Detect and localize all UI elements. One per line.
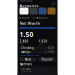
staticText: Savings: [21, 50, 30, 54]
staticText: Checking: [21, 46, 34, 50]
staticText: 1,140: [45, 50, 54, 54]
staticText: Portfolio: [19, 0, 32, 2]
button[interactable]: Checking: [19, 47, 55, 50]
staticText: Move: [24, 58, 31, 61]
staticText: 2,480: [19, 40, 28, 43]
button[interactable]: Subscriptions: [19, 67, 55, 74]
button[interactable]: Move: [19, 57, 36, 61]
staticText: Expenses: [19, 62, 31, 66]
staticText: Subscriptions: [21, 68, 31, 70]
staticText: Accounts: [19, 3, 38, 8]
staticText: Income: [19, 44, 24, 46]
staticText: 4 active this month: [21, 71, 32, 72]
button[interactable]: Card one: [19, 8, 28, 15]
button[interactable]: Deposit: [38, 57, 55, 61]
button[interactable]: Portfolio: [19, 0, 38, 8]
staticText: 1,020: [38, 40, 47, 43]
staticText: Net Worth: [19, 21, 40, 26]
staticText: 820: [48, 46, 54, 50]
button[interactable]: Savings: [19, 51, 55, 54]
button[interactable]: Card two: [29, 8, 37, 15]
button[interactable]: Profile: [51, 2, 55, 6]
staticText: Transfer between accounts: [19, 55, 39, 56]
staticText: Spend: [38, 44, 43, 46]
staticText: Deposit: [41, 58, 52, 61]
staticText: 1.50: [19, 30, 33, 39]
button[interactable]: Card four: [47, 8, 55, 15]
staticText: Active · 4 accounts: [22, 16, 47, 20]
button[interactable]: Card three: [38, 8, 46, 15]
button[interactable]: More: [44, 74, 57, 75]
